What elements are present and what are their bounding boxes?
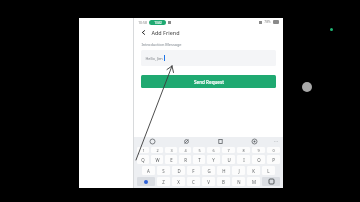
button[interactable]: 0 [267,147,280,153]
button[interactable]: U [222,155,235,164]
staticText: R [184,157,187,163]
button[interactable]: Settings [237,137,271,146]
button[interactable]: I [237,155,250,164]
button[interactable]: 3 [165,147,177,153]
staticText: Add Friend [151,29,180,36]
button[interactable]: Hello, Jim [141,50,276,66]
button[interactable]: Shift [137,177,155,186]
button[interactable]: 8 [237,147,250,153]
staticText: Y [212,157,215,163]
button[interactable]: More [271,137,281,146]
staticText: V [207,179,210,185]
staticText: 1 [142,148,145,153]
button[interactable]: Emoji [136,137,169,146]
staticText: H [222,168,226,174]
button[interactable]: Y [207,155,220,164]
staticText: 0 [272,148,275,153]
staticText: 2 [156,148,159,153]
button[interactable]: L [262,166,275,175]
staticText: C [192,179,195,185]
button[interactable]: B [217,177,230,186]
button[interactable]: D [172,166,185,175]
staticText: P [272,157,275,163]
button[interactable]: P [267,155,280,164]
staticText: 3 [170,148,173,153]
button[interactable]: R [179,155,191,164]
staticText: 6 [212,148,215,153]
button[interactable]: S [157,166,170,175]
button[interactable]: W [151,155,163,164]
staticText: S [162,168,165,174]
button[interactable]: 7 [222,147,235,153]
staticText: 13:32 [154,21,162,25]
staticText: W [155,157,160,163]
button[interactable]: K [247,166,260,175]
button[interactable]: V [202,177,215,186]
staticText: M [252,179,256,185]
staticText: L [267,168,270,174]
button[interactable]: 1 [137,147,149,153]
staticText: I [243,157,245,163]
staticText: 7 [227,148,230,153]
button[interactable]: M [247,177,260,186]
staticText: 8 [242,148,245,153]
staticText: U [227,157,231,163]
button[interactable]: 9 [252,147,265,153]
button[interactable]: Backspace [262,177,280,186]
staticText: E [170,157,173,163]
button[interactable]: J [232,166,245,175]
staticText: 5 [198,148,201,153]
staticText: X [177,179,180,185]
staticText: G [207,168,211,174]
button[interactable]: E [165,155,177,164]
button[interactable]: GIF [169,137,203,146]
staticText: 4 [184,148,187,153]
staticText: 10:58 [138,20,147,25]
staticText: K [252,168,255,174]
staticText: A [147,168,150,174]
button[interactable]: 6 [207,147,220,153]
button[interactable]: Z [157,177,170,186]
button[interactable]: X [172,177,185,186]
staticText: O [257,157,261,163]
button[interactable]: C [187,177,200,186]
button[interactable]: Send Request [141,75,276,88]
staticText: Hello, Jim [145,56,163,61]
staticText: T [198,157,201,163]
button[interactable]: 5 [193,147,205,153]
staticText: 9 [257,148,260,153]
staticText: 78% [264,20,271,24]
button[interactable]: Clipboard [203,137,237,146]
staticText: Z [162,179,165,185]
button[interactable]: Q [137,155,149,164]
button[interactable]: G [202,166,215,175]
button[interactable]: H [217,166,230,175]
staticText: F [192,168,195,174]
button[interactable]: 2 [151,147,163,153]
staticText: Q [141,157,145,163]
button[interactable]: N [232,177,245,186]
staticText: B [222,179,225,185]
staticText: N [237,179,241,185]
staticText: Send Request [194,79,224,85]
button[interactable]: A [142,166,155,175]
button[interactable]: F [187,166,200,175]
staticText: D [177,168,181,174]
button[interactable]: 4 [179,147,191,153]
staticText: ⋯ [274,139,278,144]
button[interactable]: Back [139,28,148,37]
staticText: J [238,168,240,174]
staticText: Introduction Message [141,42,182,47]
button[interactable]: O [252,155,265,164]
button[interactable]: T [193,155,205,164]
